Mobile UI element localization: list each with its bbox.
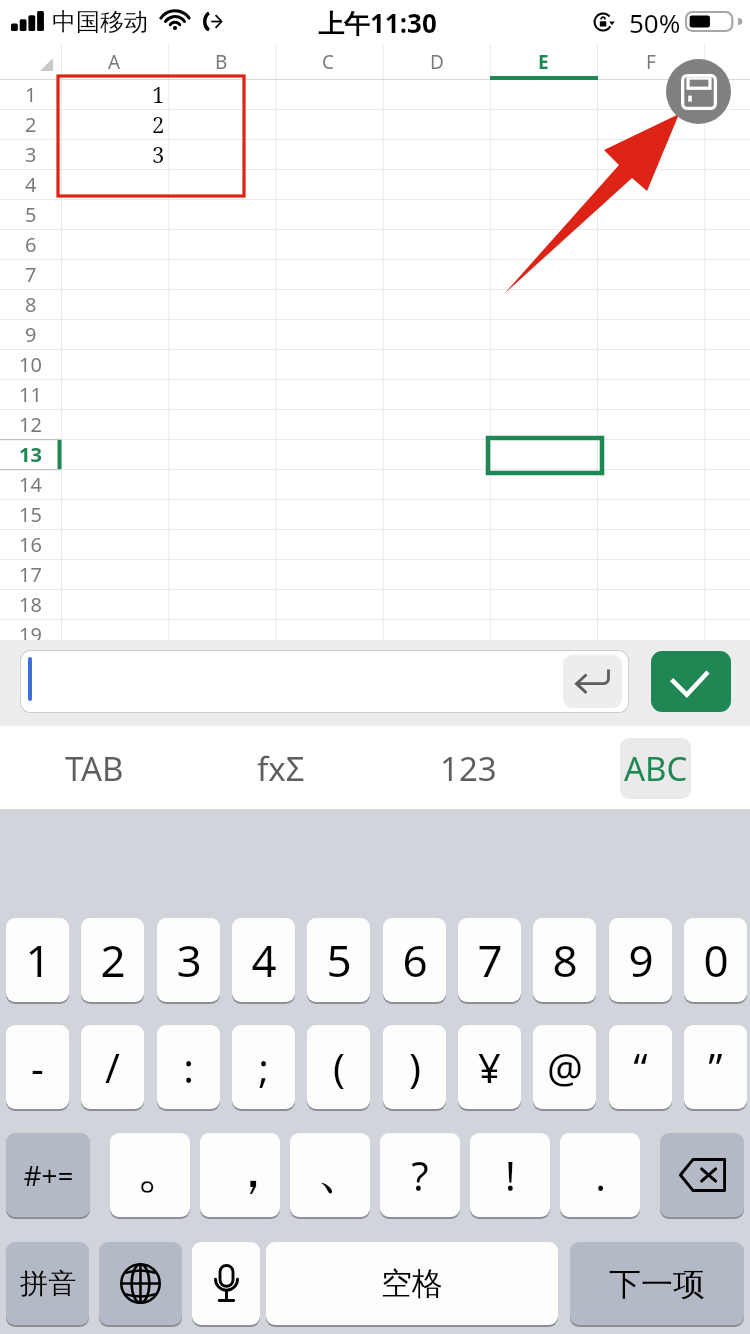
button[interactable]: ; <box>232 1025 295 1109</box>
staticText: 1 <box>25 930 51 990</box>
staticText: 9 <box>628 930 654 990</box>
staticText: 空格 <box>381 1264 443 1303</box>
staticText: 16 <box>19 531 42 558</box>
button[interactable]: ” <box>684 1025 747 1109</box>
button[interactable]: New line <box>20 650 629 713</box>
button[interactable]: ABC <box>580 726 730 810</box>
staticText: 拼音 <box>20 1266 76 1301</box>
staticText: 15 <box>19 501 42 528</box>
staticText: ， <box>226 1135 280 1203</box>
staticText: @ <box>547 1040 583 1094</box>
staticText: 19 <box>19 621 42 648</box>
staticText: 12 <box>19 411 42 438</box>
button[interactable]: ¥ <box>458 1025 521 1109</box>
staticText: 123 <box>440 746 497 791</box>
staticText: 7 <box>477 930 503 990</box>
staticText: 2 <box>152 109 165 139</box>
button[interactable]: 9 <box>609 918 672 1002</box>
staticText: : <box>183 1040 194 1094</box>
button[interactable]: 123 <box>393 726 543 810</box>
button[interactable]: ? <box>380 1133 460 1217</box>
staticText: fxΣ <box>257 746 305 791</box>
staticText: ” <box>708 1040 723 1094</box>
staticText: F <box>646 49 656 75</box>
button[interactable]: Confirm <box>651 651 731 712</box>
button[interactable]: Save <box>666 59 731 124</box>
staticText: 1 <box>25 81 37 108</box>
staticText: ) <box>409 1040 421 1094</box>
staticText: #+= <box>23 1156 74 1194</box>
staticText: 上午11:30 <box>318 5 437 39</box>
staticText: 4 <box>25 171 37 198</box>
button[interactable]: 7 <box>458 918 521 1002</box>
button[interactable]: ， <box>200 1133 280 1217</box>
button[interactable]: . <box>560 1133 640 1217</box>
button[interactable]: 3 <box>157 918 220 1002</box>
staticText: 1 <box>152 79 165 109</box>
staticText: B <box>215 49 228 75</box>
button[interactable]: 、 <box>290 1133 370 1217</box>
staticText: TAB <box>65 746 124 791</box>
button[interactable]: ( <box>307 1025 370 1109</box>
staticText: 10 <box>19 351 42 378</box>
staticText: 6 <box>25 231 37 258</box>
staticText: / <box>105 1040 120 1094</box>
staticText: 3 <box>152 139 165 169</box>
staticText: 6 <box>402 930 428 990</box>
staticText: 0 <box>703 930 729 990</box>
button[interactable]: backspace <box>660 1133 744 1217</box>
staticText: 3 <box>25 141 37 168</box>
staticText: 2 <box>25 111 37 138</box>
staticText: ABC <box>624 746 688 791</box>
button[interactable]: 2 <box>81 918 144 1002</box>
staticText: - <box>31 1040 44 1094</box>
staticText: 4 <box>251 930 277 990</box>
button[interactable]: 4 <box>232 918 295 1002</box>
staticText: 18 <box>19 591 42 618</box>
staticText: 8 <box>25 291 37 318</box>
staticText: “ <box>633 1040 648 1094</box>
staticText: 50% <box>629 5 681 39</box>
staticText: 下一项 <box>609 1264 705 1304</box>
button[interactable]: TAB <box>19 726 169 810</box>
staticText: ( <box>333 1040 345 1094</box>
button[interactable]: 8 <box>533 918 596 1002</box>
button[interactable]: “ <box>609 1025 672 1109</box>
staticText: 中国移动 <box>52 7 148 37</box>
button[interactable]: globe <box>99 1242 182 1325</box>
button[interactable]: 5 <box>307 918 370 1002</box>
button[interactable]: ! <box>470 1133 550 1217</box>
staticText: E <box>538 49 549 75</box>
staticText: 2 <box>100 930 126 990</box>
button[interactable]: 6 <box>383 918 446 1002</box>
staticText: D <box>430 49 444 75</box>
staticText: 5 <box>326 930 352 990</box>
staticText: 3 <box>176 930 202 990</box>
staticText: 。 <box>136 1135 190 1203</box>
staticText: C <box>322 49 335 75</box>
button[interactable]: 空格 <box>266 1242 558 1325</box>
button[interactable]: 。 <box>110 1133 190 1217</box>
button[interactable]: New line <box>563 655 622 708</box>
button[interactable]: #+= <box>6 1133 90 1217</box>
staticText: 13 <box>19 441 42 468</box>
button[interactable]: ) <box>383 1025 446 1109</box>
button[interactable]: - <box>6 1025 69 1109</box>
staticText: 7 <box>25 261 37 288</box>
staticText: ¥ <box>478 1040 501 1094</box>
button[interactable]: 0 <box>684 918 747 1002</box>
button[interactable]: 下一项 <box>570 1242 744 1325</box>
button[interactable]: @ <box>533 1025 596 1109</box>
staticText: 5 <box>25 201 37 228</box>
staticText: ! <box>505 1148 516 1202</box>
button[interactable]: mic <box>192 1242 260 1325</box>
staticText: ? <box>411 1148 429 1202</box>
button[interactable]: fxΣ <box>206 726 356 810</box>
button[interactable]: 拼音 <box>6 1242 89 1325</box>
staticText: 8 <box>552 930 578 990</box>
button[interactable]: / <box>81 1025 144 1109</box>
staticText: 9 <box>25 321 37 348</box>
staticText: . <box>595 1148 606 1202</box>
button[interactable]: : <box>157 1025 220 1109</box>
button[interactable]: 1 <box>6 918 69 1002</box>
